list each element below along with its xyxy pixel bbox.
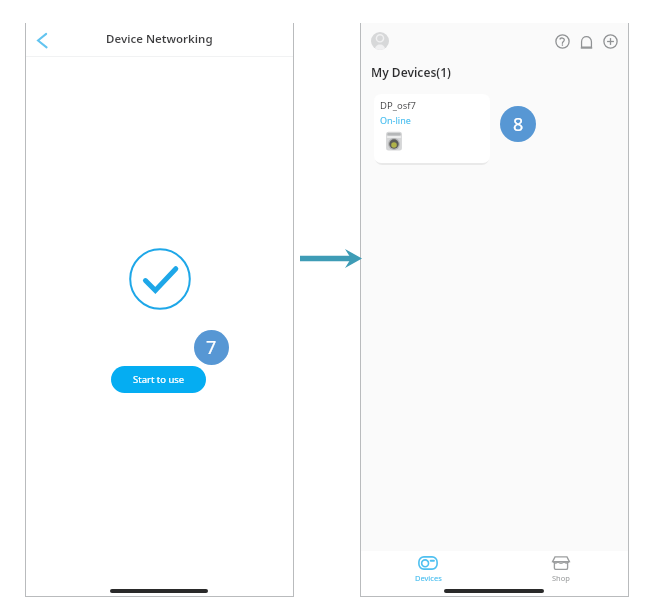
staticText: Device Networking (106, 31, 213, 47)
staticText: Shop (552, 573, 570, 583)
button[interactable]: Add device (603, 34, 618, 49)
staticText: Start to use (133, 373, 185, 386)
staticText: 7 (206, 335, 217, 360)
button[interactable]: DP_osf7 (374, 94, 490, 163)
button[interactable]: Back (32, 29, 54, 51)
staticText: Devices (415, 573, 442, 583)
button[interactable]: Notifications (580, 34, 593, 49)
button[interactable]: Devices (400, 551, 456, 597)
button[interactable]: Profile (371, 32, 389, 50)
staticText: 8 (513, 112, 524, 137)
button[interactable]: Start to use (111, 366, 206, 393)
staticText: My Devices(1) (371, 64, 451, 80)
staticText: DP_osf7 (380, 99, 416, 112)
button[interactable]: Help (555, 34, 570, 49)
staticText: On-line (380, 114, 411, 126)
button[interactable]: Shop (533, 551, 589, 597)
